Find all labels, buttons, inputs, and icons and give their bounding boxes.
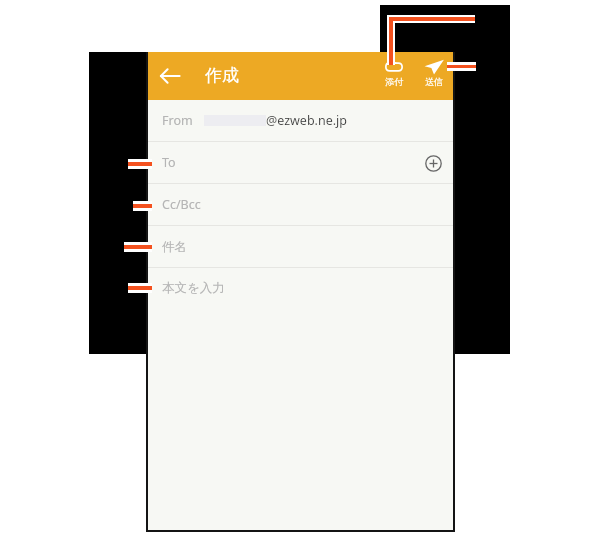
button[interactable]: To [148,142,453,183]
button[interactable]: Send [416,59,452,87]
button[interactable]: From [148,100,453,141]
staticText: 件名 [162,239,187,255]
button[interactable]: Attach [376,59,412,87]
staticText: 送信 [425,76,443,87]
staticText: To [162,154,176,171]
staticText: @ezweb.ne.jp [266,112,347,129]
button[interactable]: 本文を入力 [148,268,453,536]
button[interactable]: Back [158,64,182,88]
button[interactable]: 件名 [148,226,453,267]
button[interactable]: Add recipient [419,149,447,177]
staticText: 本文を入力 [162,280,225,296]
button[interactable]: Cc/Bcc [148,184,453,225]
staticText: Cc/Bcc [162,196,201,213]
staticText: 添付 [385,76,403,87]
staticText: From [162,112,193,129]
staticText: 作成 [205,65,239,86]
